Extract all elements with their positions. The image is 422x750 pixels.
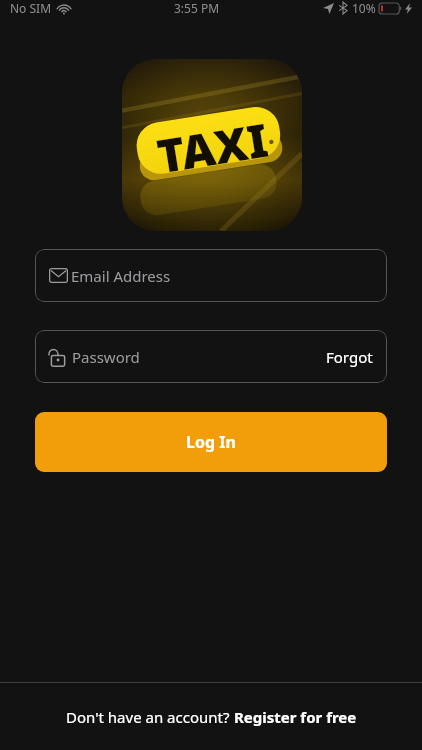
other: Email — [49, 268, 68, 283]
other: Password — [48, 347, 65, 367]
staticText: Don't have an account? — [66, 707, 234, 727]
staticText: Email Address — [71, 266, 171, 286]
staticText: TAXI — [153, 108, 272, 187]
staticText: Register for free — [234, 707, 357, 727]
staticText: Forgot — [326, 347, 373, 367]
button[interactable]: Email — [35, 249, 387, 302]
button[interactable]: Log In — [35, 412, 387, 472]
staticText: No SIM — [10, 0, 52, 16]
button[interactable]: Password — [35, 330, 387, 383]
staticText: Log In — [186, 431, 236, 453]
staticText: 10% — [352, 0, 376, 16]
staticText: 3:55 PM — [174, 0, 220, 16]
staticText: Password — [72, 347, 140, 367]
button[interactable]: Forgot — [326, 347, 373, 367]
button[interactable]: Don't have an account? — [0, 683, 422, 750]
